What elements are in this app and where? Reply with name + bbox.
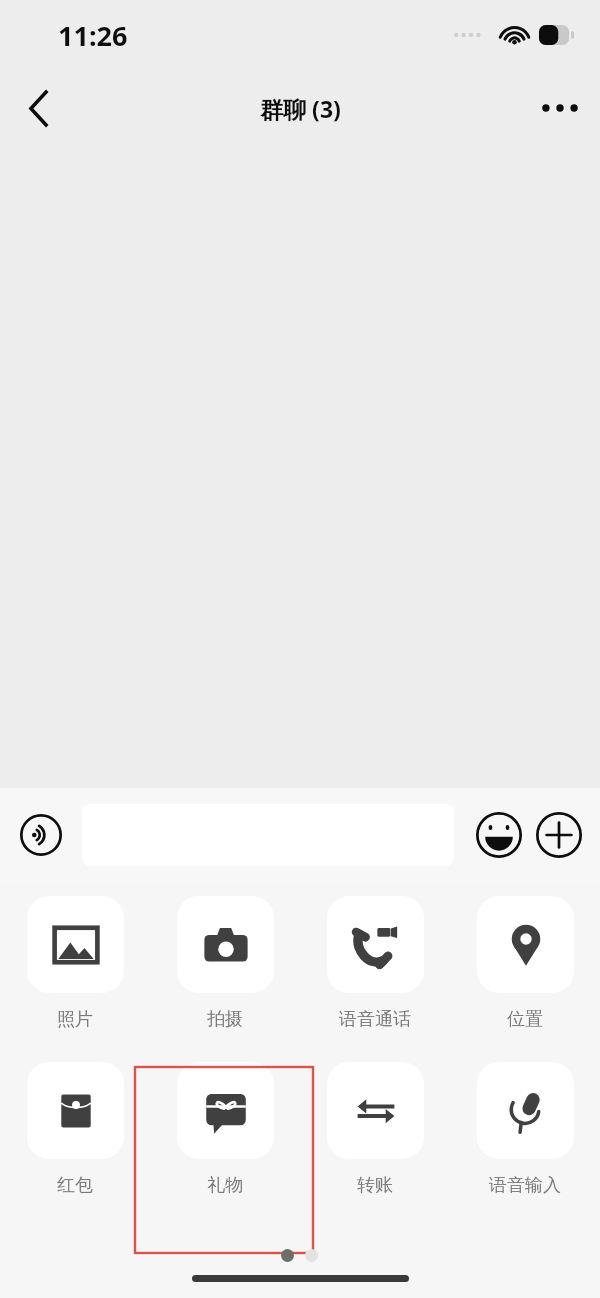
button[interactable]: Emoji xyxy=(470,806,528,864)
button[interactable]: 照片 xyxy=(0,896,150,1031)
staticText: 红包 xyxy=(57,1174,93,1197)
button[interactable]: More attachments xyxy=(530,806,588,864)
staticText: 语音通话 xyxy=(339,1008,411,1031)
staticText: 群聊 (3) xyxy=(260,93,341,124)
button[interactable]: More options xyxy=(526,74,594,142)
button[interactable]: 位置 xyxy=(450,896,600,1031)
button[interactable]: 拍摄 xyxy=(150,896,300,1031)
button[interactable]: 语音通话 xyxy=(300,896,450,1031)
staticText: 转账 xyxy=(357,1174,393,1197)
button[interactable]: 红包 xyxy=(0,1062,150,1197)
staticText: 照片 xyxy=(57,1008,93,1031)
staticText: 拍摄 xyxy=(207,1008,243,1031)
button[interactable]: Voice message xyxy=(12,806,70,864)
staticText: 礼物 xyxy=(207,1174,243,1197)
button[interactable]: Back xyxy=(6,76,70,140)
button[interactable]: 礼物 xyxy=(150,1062,300,1197)
button[interactable]: 语音输入 xyxy=(450,1062,600,1197)
staticText: 位置 xyxy=(507,1008,543,1031)
button[interactable]: 转账 xyxy=(300,1062,450,1197)
staticText: 11:26 xyxy=(58,17,128,54)
staticText: 语音输入 xyxy=(489,1174,561,1197)
